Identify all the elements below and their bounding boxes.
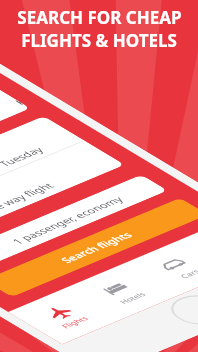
staticText: Cars (177, 266, 198, 281)
button[interactable]: More (178, 211, 198, 276)
staticText: KUL (10, 98, 27, 107)
button[interactable]: 1 passenger, economy (0, 161, 169, 286)
staticText: SEARCH FOR CHEAP (17, 6, 182, 29)
staticText: FLIGHTS & HOTELS (21, 29, 177, 52)
staticText: Search flights (56, 225, 136, 270)
staticText: Hotels (116, 288, 149, 307)
button[interactable]: Cars (121, 235, 198, 300)
staticText: One way flight (0, 176, 58, 222)
button[interactable]: From (0, 46, 34, 204)
staticText: Flights (58, 313, 91, 331)
button[interactable]: Flights (6, 283, 122, 348)
button[interactable]: Hotels (64, 260, 179, 324)
button[interactable]: Depart (0, 102, 128, 261)
staticText: 1 passenger, economy (7, 187, 127, 253)
button[interactable]: Search flights (0, 184, 198, 311)
staticText: Tuesday (0, 142, 48, 171)
